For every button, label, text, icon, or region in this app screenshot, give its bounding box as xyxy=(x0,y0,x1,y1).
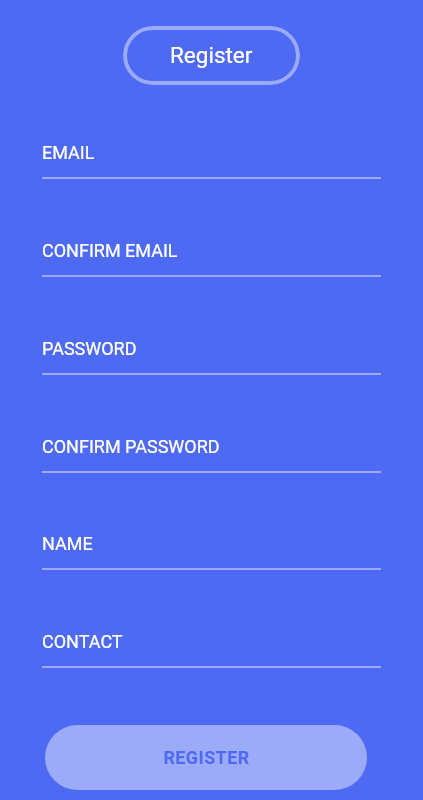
button[interactable]: EMAIL xyxy=(42,141,381,181)
staticText: PASSWORD xyxy=(42,338,137,359)
button[interactable]: Register xyxy=(123,26,300,85)
button[interactable]: CONTACT xyxy=(42,630,381,670)
staticText: EMAIL xyxy=(42,142,95,163)
staticText: REGISTER xyxy=(163,747,250,768)
button[interactable]: CONFIRM PASSWORD xyxy=(42,435,381,475)
staticText: NAME xyxy=(42,533,93,554)
staticText: CONFIRM PASSWORD xyxy=(42,436,220,457)
staticText: Register xyxy=(170,42,253,68)
staticText: CONFIRM EMAIL xyxy=(42,240,178,261)
button[interactable]: NAME xyxy=(42,532,381,572)
button[interactable]: CONFIRM EMAIL xyxy=(42,239,381,279)
button[interactable]: Register xyxy=(45,725,367,790)
staticText: CONTACT xyxy=(42,631,123,652)
button[interactable]: PASSWORD xyxy=(42,337,381,377)
